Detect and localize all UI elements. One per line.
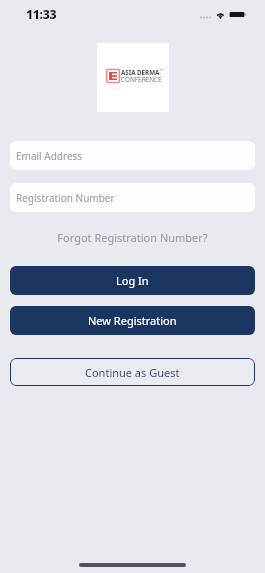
staticText: Continue as Guest: [85, 365, 180, 380]
staticText: New Registration: [88, 313, 177, 328]
staticText: Forgot Registration Number?: [57, 230, 208, 245]
button[interactable]: Log In: [10, 266, 255, 295]
button[interactable]: Forgot Registration Number?: [53, 226, 212, 249]
staticText: ASIA DERMA: [121, 68, 160, 77]
staticText: Log In: [116, 273, 149, 288]
staticText: ™: [160, 68, 164, 73]
button[interactable]: Continue as Guest: [10, 358, 255, 386]
button[interactable]: New Registration: [10, 306, 255, 335]
staticText: 11:33: [26, 6, 57, 23]
button[interactable]: Registration Number: [10, 183, 255, 212]
staticText: Email Address: [16, 149, 83, 163]
staticText: Registration Number: [16, 191, 115, 205]
other: Asia Derma Conference logo: [97, 43, 169, 112]
staticText: CONFERENCE: [121, 75, 162, 84]
button[interactable]: Email Address: [10, 141, 255, 170]
